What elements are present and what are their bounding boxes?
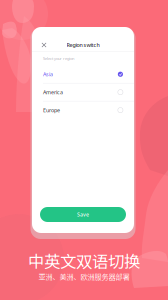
staticText: Save [77,211,89,218]
staticText: Region switch [66,41,99,49]
staticText: 亚洲、美洲、欧洲服务器部署 [38,271,129,282]
staticText: Europe [43,107,60,114]
button[interactable]: Save [40,207,126,222]
button[interactable]: Asia [32,65,134,83]
staticText: 中英文双语切换 [28,249,140,272]
button[interactable]: Close [37,38,50,51]
button[interactable]: Europe [32,101,134,119]
staticText: Select your region [43,56,74,61]
button[interactable]: America [32,83,134,101]
staticText: Asia [43,71,53,78]
staticText: America [43,89,63,96]
